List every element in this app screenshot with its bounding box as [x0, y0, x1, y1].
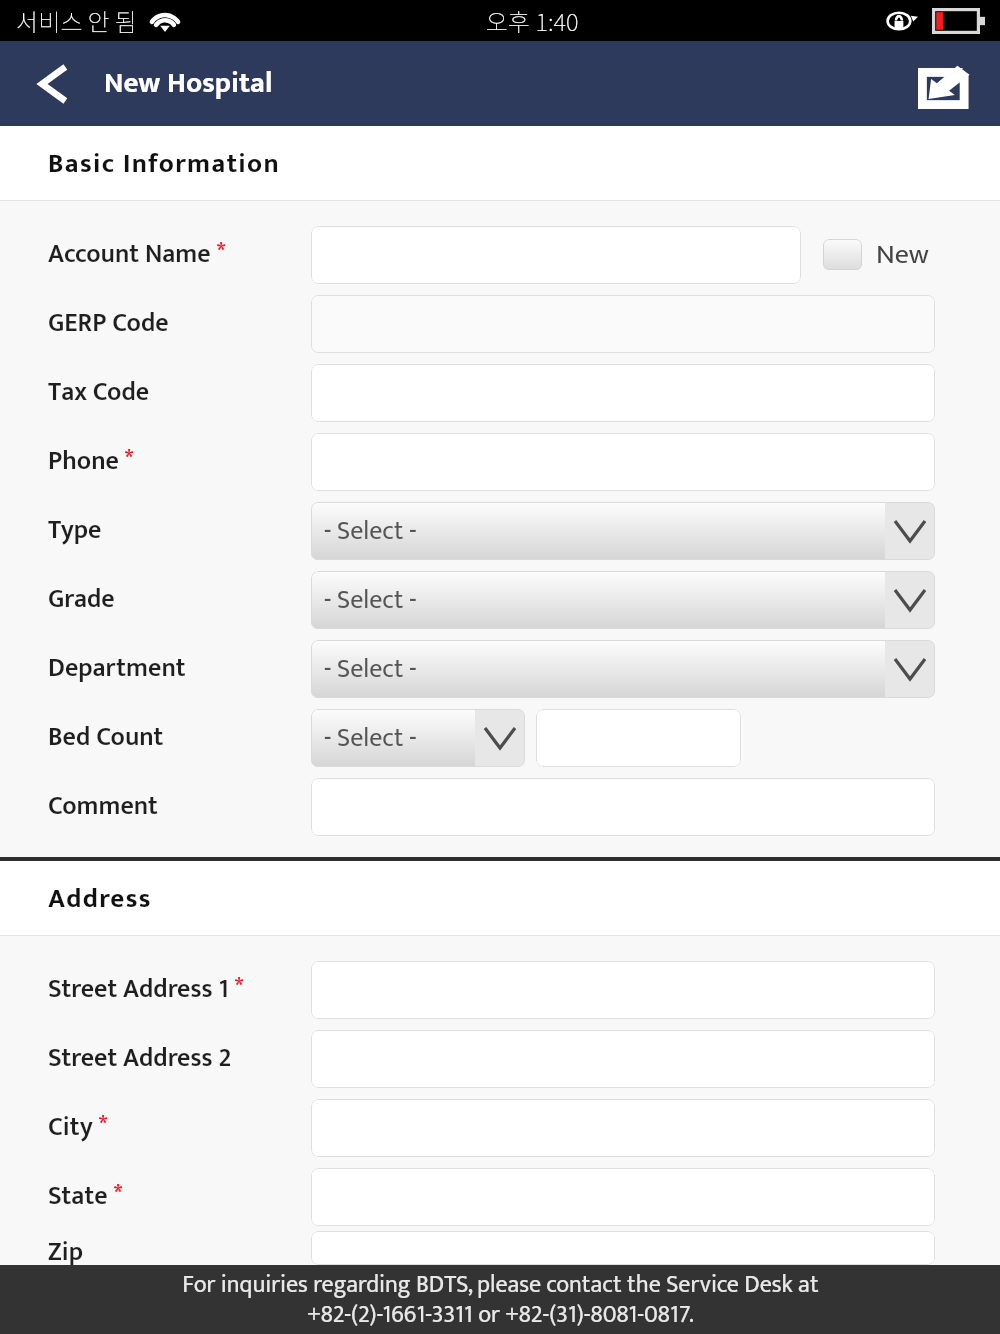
staticText: - Select -	[324, 648, 417, 691]
staticText: Phone	[48, 440, 119, 483]
staticText: Street Address 2	[48, 1037, 232, 1080]
staticText: GERP Code	[48, 302, 169, 345]
staticText: Account Name	[48, 233, 211, 276]
button[interactable]	[311, 1168, 935, 1226]
staticText: *	[93, 1106, 108, 1146]
staticText: 서비스 안 됨	[16, 3, 137, 38]
button[interactable]	[311, 433, 935, 491]
staticText: - Select -	[324, 510, 417, 553]
staticText: Address	[48, 876, 152, 921]
staticText: Grade	[48, 578, 115, 621]
button[interactable]	[311, 226, 801, 284]
staticText: - Select -	[324, 717, 417, 760]
staticText: *	[211, 233, 226, 273]
button[interactable]: - Select -	[311, 502, 935, 560]
staticText: Basic Information	[48, 141, 280, 186]
button[interactable]: Edit	[900, 41, 1000, 126]
staticText: State	[48, 1175, 108, 1218]
button[interactable]	[536, 709, 741, 767]
staticText: Zip	[48, 1231, 83, 1265]
button[interactable]: Back	[0, 41, 104, 126]
staticText: Comment	[48, 785, 158, 828]
staticText: Street Address 1	[48, 968, 229, 1011]
staticText: City	[48, 1106, 93, 1149]
button[interactable]	[311, 295, 935, 353]
button[interactable]	[311, 1099, 935, 1157]
button[interactable]	[311, 1231, 935, 1265]
staticText: - Select -	[324, 579, 417, 622]
button[interactable]	[311, 1030, 935, 1088]
staticText: *	[229, 968, 244, 1008]
staticText: *	[108, 1175, 123, 1215]
staticText: New Hospital	[104, 59, 273, 107]
button[interactable]	[311, 778, 935, 836]
staticText: *	[119, 440, 134, 480]
button[interactable]	[823, 239, 862, 270]
staticText: Tax Code	[48, 371, 150, 414]
staticText: New	[876, 231, 929, 278]
staticText: For inquiries regarding BDTS, please con…	[182, 1265, 819, 1334]
staticText: Type	[48, 509, 102, 552]
button[interactable]: - Select -	[311, 709, 525, 767]
staticText: Department	[48, 647, 186, 690]
staticText: Bed Count	[48, 716, 164, 759]
button[interactable]: - Select -	[311, 640, 935, 698]
button[interactable]: - Select -	[311, 571, 935, 629]
staticText: 오후 1:40	[486, 3, 579, 38]
button[interactable]	[311, 961, 935, 1019]
button[interactable]	[311, 364, 935, 422]
